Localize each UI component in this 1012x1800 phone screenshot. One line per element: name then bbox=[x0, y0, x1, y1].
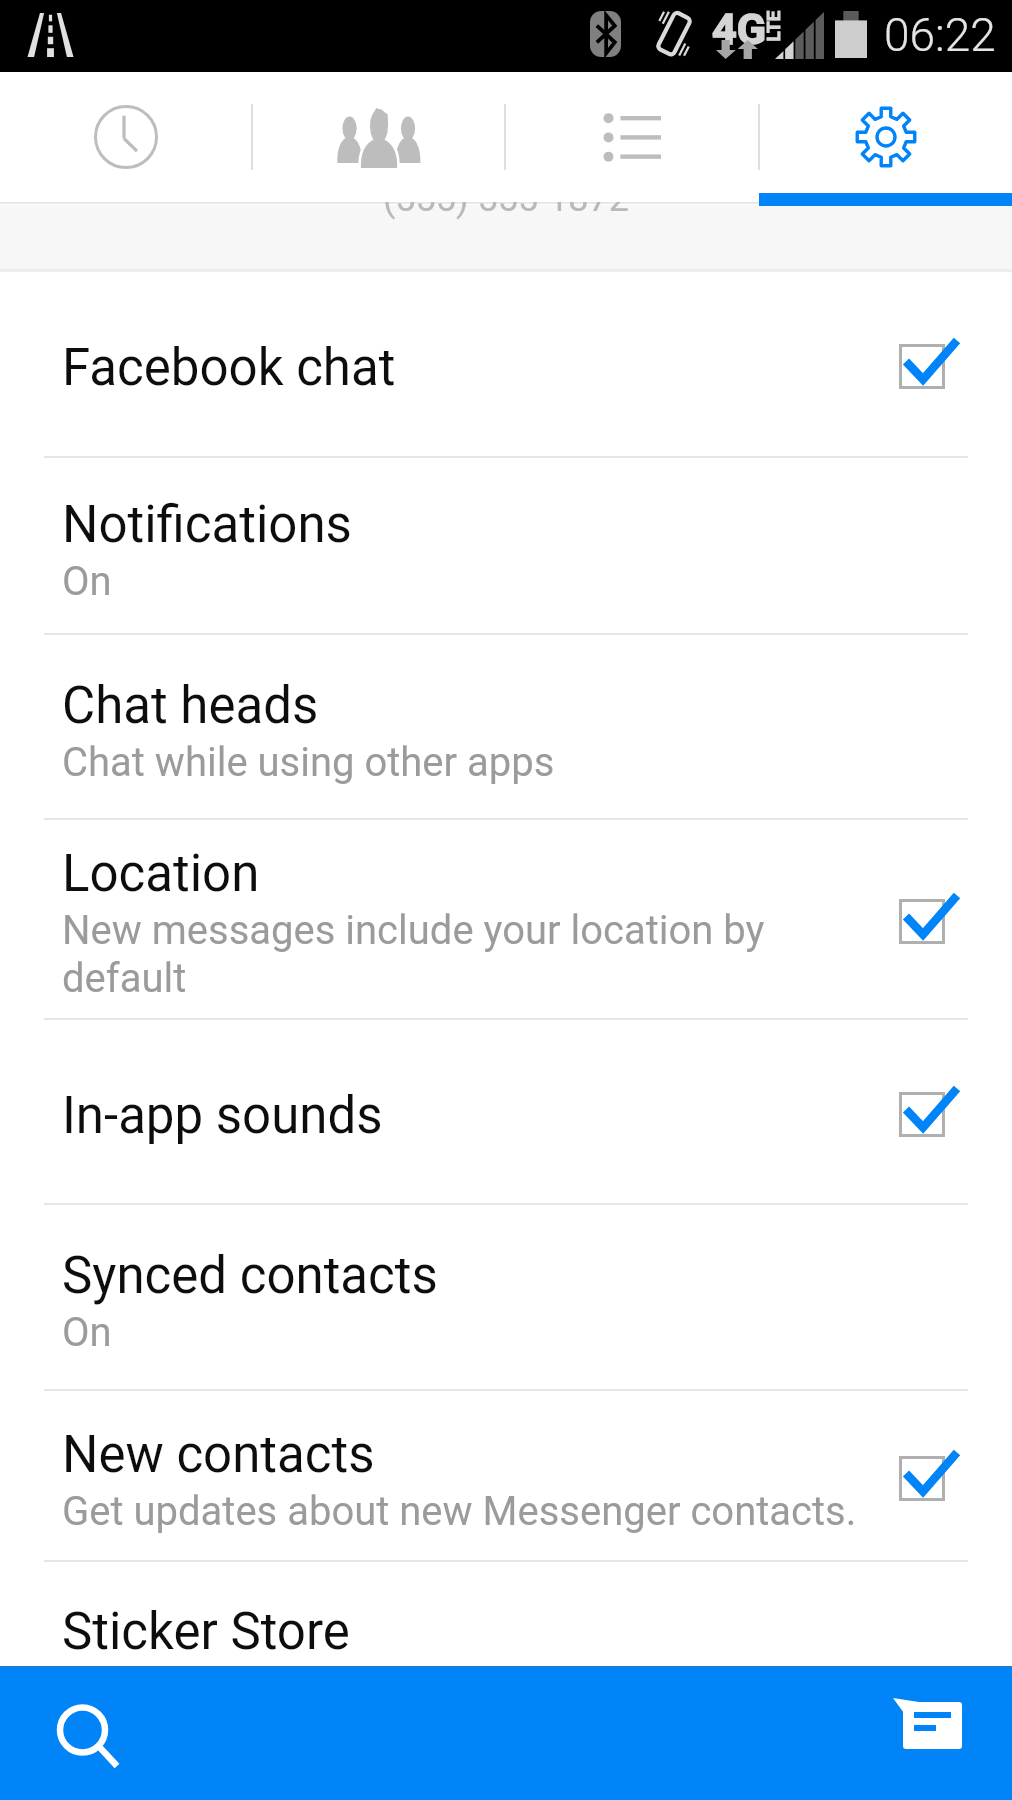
button[interactable]: Location bbox=[0, 820, 1012, 1018]
staticText: Synced contacts bbox=[62, 1246, 438, 1306]
button[interactable]: Facebook chat bbox=[0, 272, 1012, 456]
staticText: LTE bbox=[761, 10, 783, 41]
button[interactable]: Search bbox=[49, 1695, 157, 1800]
staticText: New contacts bbox=[62, 1425, 375, 1485]
button[interactable]: In-app sounds bbox=[0, 1020, 1012, 1203]
staticText: In-app sounds bbox=[62, 1086, 383, 1146]
staticText: Location bbox=[62, 844, 260, 904]
staticText: 06:22 bbox=[884, 8, 996, 62]
button[interactable]: Sticker Store bbox=[0, 1562, 1012, 1693]
staticText: Sticker Store bbox=[62, 1602, 350, 1662]
button[interactable]: Settings tab bbox=[760, 72, 1012, 202]
staticText: 4G bbox=[712, 4, 766, 54]
staticText: Chat while using other apps bbox=[62, 739, 555, 786]
staticText: Notifications bbox=[62, 495, 352, 555]
staticText: On bbox=[62, 1309, 112, 1356]
staticText: Facebook chat bbox=[62, 338, 396, 398]
staticText: New messages include your location by de… bbox=[62, 907, 874, 1002]
button[interactable]: Groups tab bbox=[253, 72, 504, 202]
button[interactable]: Chat heads bbox=[0, 635, 1012, 818]
button[interactable]: New contacts bbox=[0, 1391, 1012, 1560]
button[interactable]: Synced contacts bbox=[0, 1205, 1012, 1389]
staticText: On bbox=[62, 558, 112, 605]
button[interactable]: Recent calls tab bbox=[0, 72, 251, 202]
button[interactable]: New message bbox=[893, 1698, 971, 1758]
staticText: Chat heads bbox=[62, 676, 319, 736]
button[interactable]: Messages tab bbox=[506, 72, 758, 202]
button[interactable]: Notifications bbox=[0, 458, 1012, 633]
staticText: Get updates about new Messenger contacts… bbox=[62, 1488, 857, 1535]
staticText: (555) 555-1872 bbox=[383, 178, 630, 220]
